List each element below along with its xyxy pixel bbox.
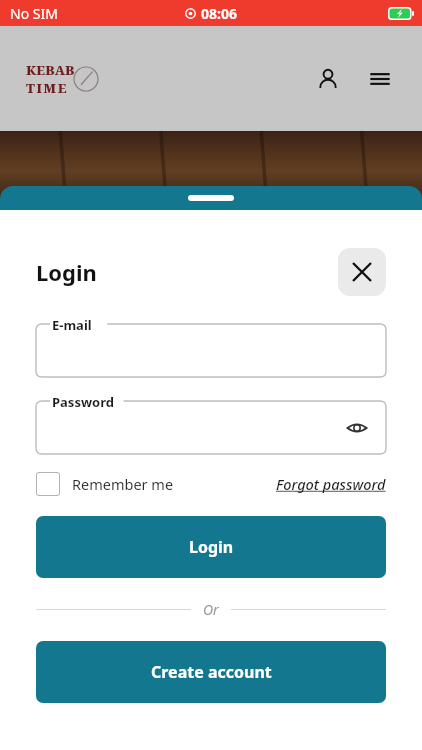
button[interactable]: Create account bbox=[36, 641, 386, 703]
staticText: Or bbox=[203, 600, 219, 619]
staticText: Login bbox=[36, 257, 97, 287]
staticText: 08:06 bbox=[201, 4, 237, 23]
button[interactable]: Password bbox=[36, 401, 386, 454]
button[interactable]: Forgot password bbox=[276, 474, 386, 494]
staticText: No SIM bbox=[10, 4, 58, 23]
button[interactable] bbox=[0, 186, 422, 210]
staticText: Remember me bbox=[72, 474, 174, 494]
button[interactable]: Menu bbox=[360, 59, 400, 99]
button[interactable]: Close bbox=[338, 248, 386, 296]
button[interactable]: Login bbox=[36, 516, 386, 578]
staticText: Login bbox=[189, 536, 234, 558]
button[interactable]: Account bbox=[308, 59, 348, 99]
staticText: TIME bbox=[26, 79, 69, 97]
button[interactable]: Show password bbox=[340, 411, 374, 445]
staticText: KEBAB bbox=[26, 61, 75, 79]
staticText: Forgot password bbox=[276, 474, 386, 494]
button[interactable]: Remember me bbox=[36, 472, 174, 496]
staticText: Create account bbox=[151, 661, 272, 683]
button[interactable]: E-mail bbox=[36, 324, 386, 377]
staticText: E-mail bbox=[52, 316, 92, 334]
staticText: Password bbox=[52, 393, 114, 411]
